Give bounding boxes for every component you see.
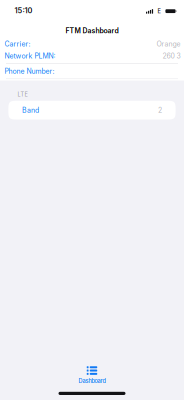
staticText: 2 <box>158 106 162 114</box>
staticText: E <box>157 8 160 15</box>
button[interactable]: Phone Number: <box>0 64 184 78</box>
button[interactable]: Dashboard <box>0 366 184 382</box>
staticText: 260 3 <box>163 52 181 60</box>
staticText: LTE <box>18 91 28 98</box>
button[interactable]: Band <box>8 101 176 119</box>
staticText: Network PLMN: <box>5 52 56 60</box>
staticText: Carrier: <box>5 40 31 48</box>
staticText: FTM Dashboard <box>65 27 118 35</box>
staticText: Orange <box>157 40 181 48</box>
staticText: Dashboard <box>78 378 105 384</box>
staticText: 15:10 <box>14 6 32 15</box>
button[interactable]: Network PLMN: <box>0 49 184 63</box>
staticText: Band <box>22 106 39 114</box>
staticText: Phone Number: <box>5 67 55 75</box>
button[interactable]: Carrier: <box>0 39 184 49</box>
